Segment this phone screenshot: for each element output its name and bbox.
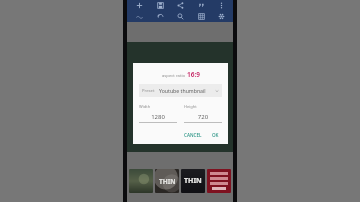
staticText: aspect ratio (162, 73, 187, 79)
staticText: THIN (159, 177, 176, 186)
button[interactable]: Undo (151, 11, 169, 22)
staticText: Youtube thumbnail (159, 87, 206, 94)
button[interactable]: Save (151, 0, 169, 11)
button[interactable]: Signature (130, 11, 148, 22)
staticText: OK (212, 132, 219, 138)
button[interactable]: Share (171, 0, 189, 11)
button[interactable]: Thumbnail 2 (155, 169, 179, 193)
staticText: 720 (184, 113, 222, 121)
button[interactable]: Effects (212, 11, 230, 22)
button[interactable]: CANCEL (181, 130, 205, 140)
staticText: THIN (184, 176, 202, 186)
staticText: Width (139, 104, 151, 109)
button[interactable]: Height (184, 104, 222, 123)
button[interactable]: Search (171, 11, 189, 22)
button[interactable]: Thumbnail 1 (129, 169, 153, 193)
staticText: CANCEL (184, 132, 202, 138)
button[interactable]: Add (130, 0, 148, 11)
button[interactable]: Width (139, 104, 177, 123)
staticText: 1280 (139, 113, 177, 121)
staticText: Preset (142, 88, 155, 94)
button[interactable]: Thumbnail 3 (181, 169, 205, 193)
button[interactable]: Preset (139, 84, 222, 97)
button[interactable]: More options (212, 0, 230, 11)
button[interactable]: OK (209, 130, 222, 140)
staticText: Height (184, 104, 197, 109)
button[interactable]: Text (192, 0, 210, 11)
button[interactable]: Grid (192, 11, 210, 22)
staticText: 16:9 (187, 70, 200, 79)
button[interactable]: Thumbnail 4 (207, 169, 231, 193)
